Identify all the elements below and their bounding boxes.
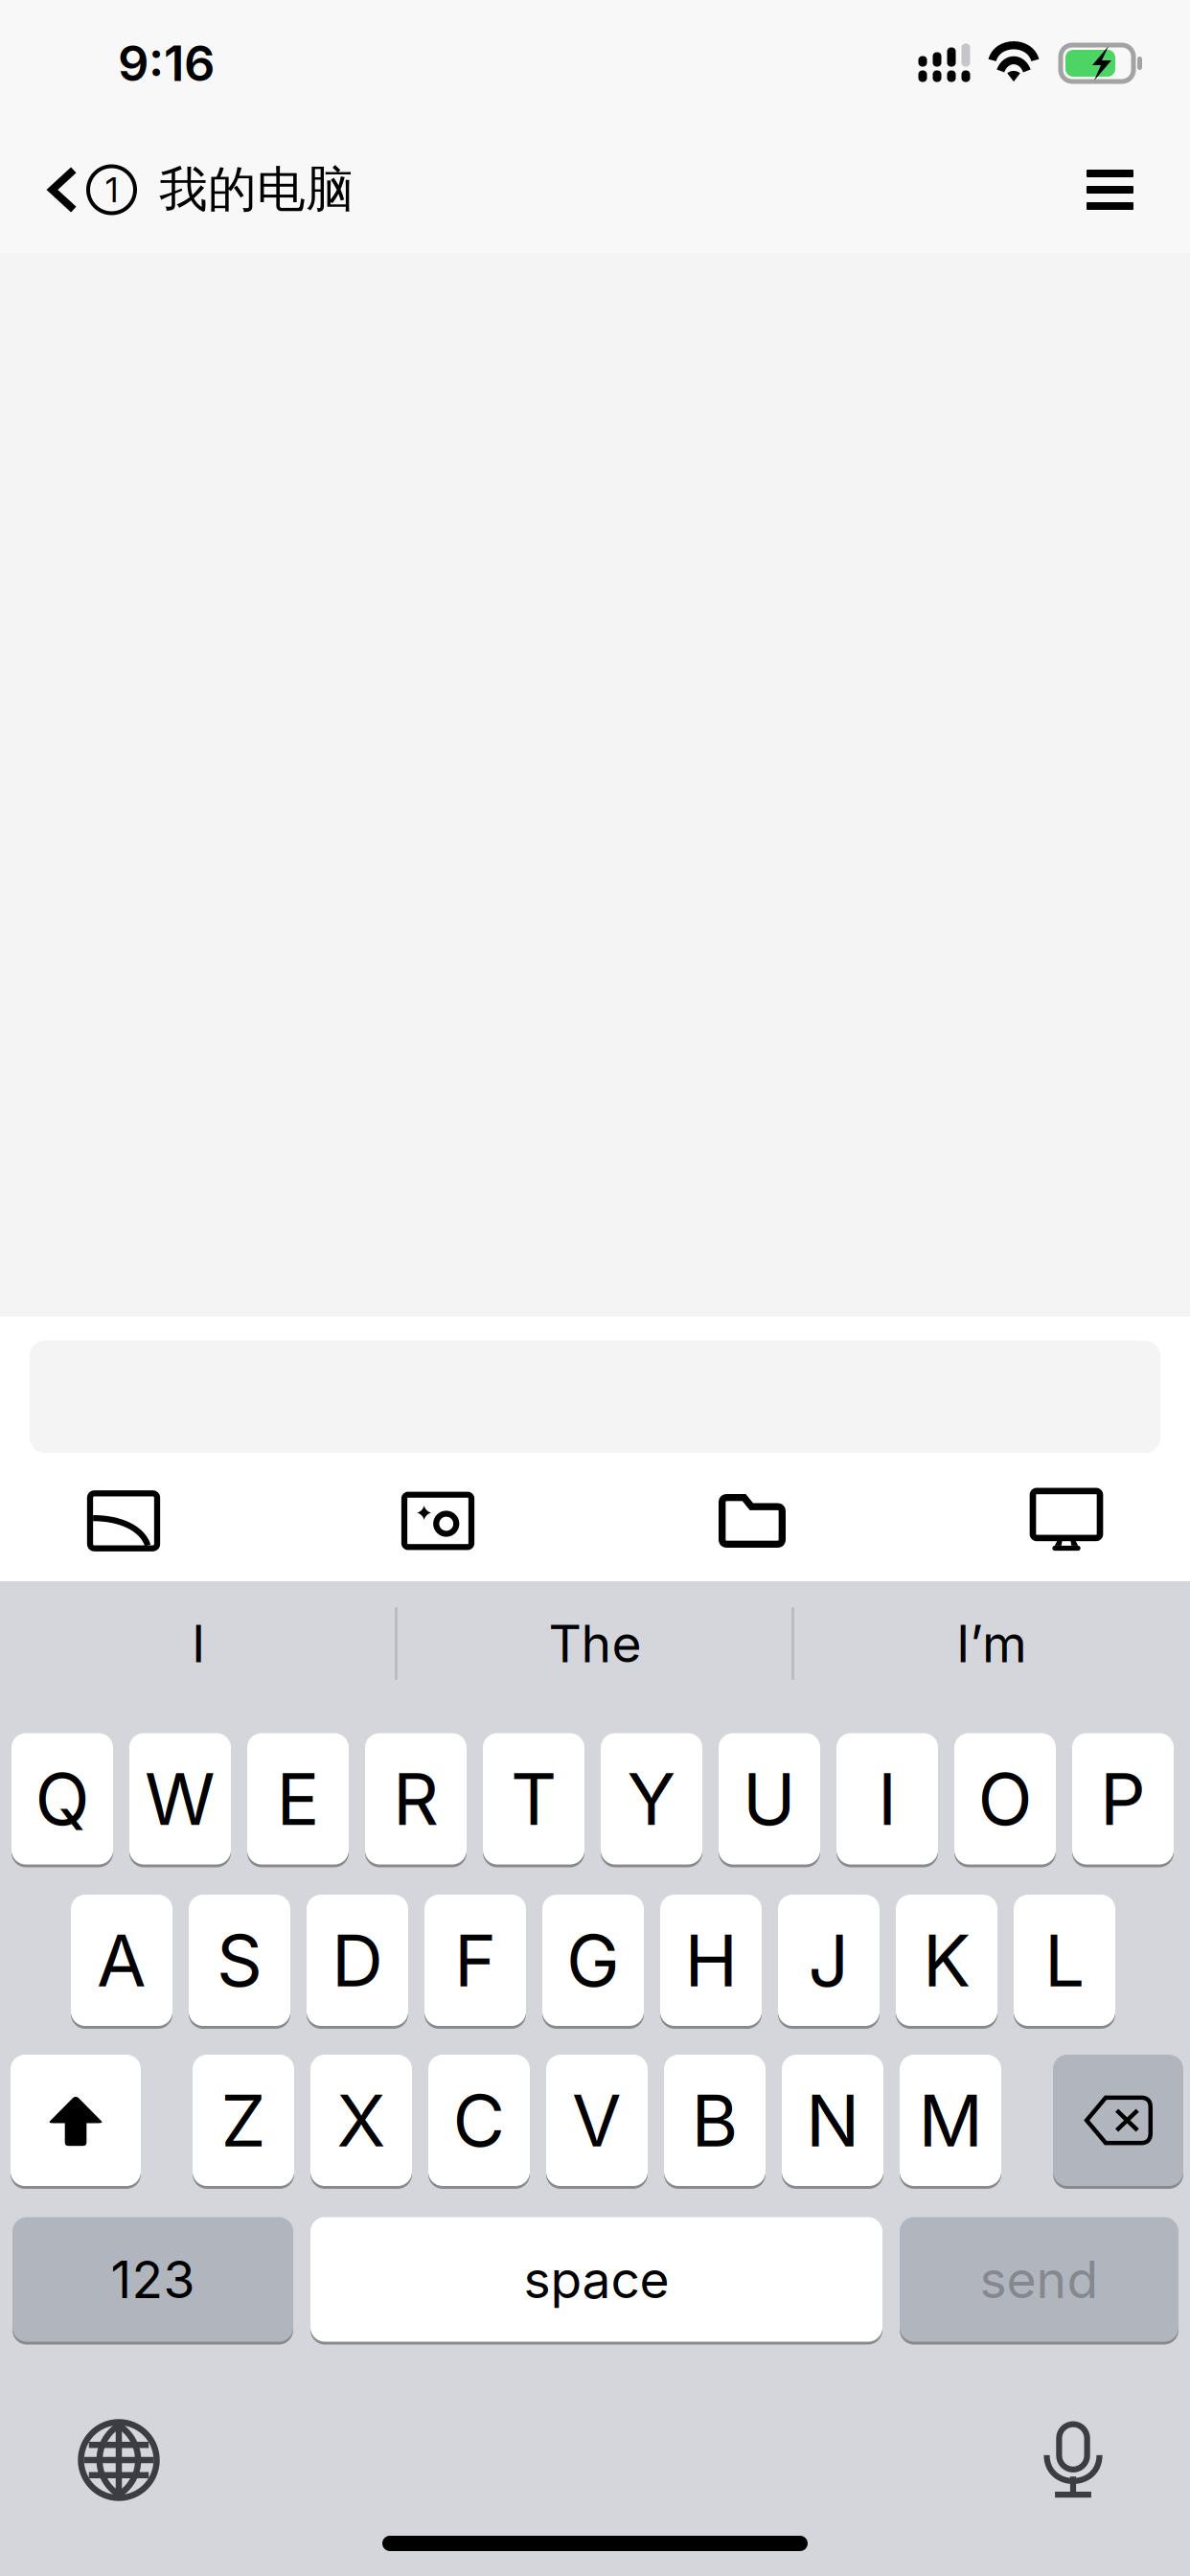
staticText: V: [572, 2077, 622, 2164]
button[interactable]: C: [428, 2053, 530, 2187]
button[interactable]: D: [307, 1893, 408, 2027]
button[interactable]: N: [782, 2053, 883, 2187]
staticText: J: [808, 1917, 849, 2003]
staticText: Z: [221, 2077, 266, 2164]
button[interactable]: X: [310, 2053, 412, 2187]
button[interactable]: The: [397, 1581, 793, 1706]
button[interactable]: M: [900, 2053, 1001, 2187]
button[interactable]: A: [71, 1893, 172, 2027]
button[interactable]: P: [1072, 1732, 1174, 1866]
staticText: G: [566, 1917, 620, 2003]
button[interactable]: R: [365, 1732, 467, 1866]
staticText: 9:16: [118, 34, 215, 93]
staticText: send: [980, 2248, 1098, 2310]
staticText: The: [549, 1613, 641, 1674]
button[interactable]: Q: [11, 1732, 113, 1866]
button[interactable]: I: [836, 1732, 938, 1866]
button[interactable]: Shift: [11, 2053, 141, 2187]
staticText: M: [918, 2077, 983, 2164]
button[interactable]: J: [778, 1893, 880, 2027]
button[interactable]: L: [1014, 1893, 1115, 2027]
button[interactable]: Screen share: [995, 1480, 1138, 1562]
staticText: E: [276, 1755, 320, 1842]
button[interactable]: Photo library: [52, 1480, 195, 1562]
button[interactable]: T: [483, 1732, 584, 1866]
staticText: L: [1044, 1917, 1085, 2003]
staticText: H: [685, 1917, 737, 2003]
button[interactable]: space: [310, 2216, 882, 2343]
button[interactable]: Next keyboard: [61, 2412, 176, 2508]
button[interactable]: W: [129, 1732, 231, 1866]
button[interactable]: Menu: [1037, 126, 1190, 253]
button[interactable]: Z: [193, 2053, 294, 2187]
button[interactable]: S: [189, 1893, 290, 2027]
button[interactable]: O: [954, 1732, 1056, 1866]
button[interactable]: send: [900, 2216, 1179, 2343]
staticText: O: [978, 1755, 1032, 1842]
staticText: W: [145, 1755, 216, 1842]
staticText: N: [806, 2077, 859, 2164]
button[interactable]: Back, 1 unread: [0, 126, 145, 253]
staticText: I: [878, 1755, 897, 1842]
button[interactable]: I: [0, 1581, 397, 1706]
staticText: space: [524, 2248, 669, 2310]
staticText: 我的电脑: [159, 160, 355, 220]
staticText: U: [743, 1755, 796, 1842]
button[interactable]: 123: [12, 2216, 293, 2343]
button[interactable]: Y: [601, 1732, 702, 1866]
staticText: K: [923, 1917, 971, 2003]
button[interactable]: V: [546, 2053, 648, 2187]
staticText: 1: [105, 169, 118, 211]
button[interactable]: B: [664, 2053, 766, 2187]
button[interactable]: G: [542, 1893, 644, 2027]
staticText: D: [332, 1917, 383, 2003]
staticText: I’m: [956, 1613, 1027, 1674]
button[interactable]: Delete: [1053, 2053, 1183, 2187]
staticText: C: [453, 2077, 505, 2164]
button[interactable]: Camera: [366, 1480, 510, 1562]
button[interactable]: F: [424, 1893, 526, 2027]
staticText: 123: [111, 2248, 195, 2310]
staticText: Q: [35, 1755, 90, 1842]
staticText: F: [454, 1917, 496, 2003]
staticText: S: [217, 1917, 263, 2003]
staticText: P: [1100, 1755, 1146, 1842]
staticText: B: [691, 2077, 738, 2164]
button[interactable]: K: [896, 1893, 997, 2027]
staticText: X: [337, 2077, 386, 2164]
staticText: I: [192, 1613, 205, 1674]
staticText: Y: [627, 1755, 676, 1842]
button[interactable]: H: [660, 1893, 762, 2027]
staticText: A: [97, 1917, 147, 2003]
button[interactable]: E: [247, 1732, 349, 1866]
staticText: R: [393, 1755, 439, 1842]
staticText: T: [511, 1755, 557, 1842]
button[interactable]: Dictate: [1016, 2412, 1131, 2508]
button[interactable]: I’m: [793, 1581, 1190, 1706]
button[interactable]: U: [719, 1732, 820, 1866]
button[interactable]: Files: [680, 1480, 824, 1562]
